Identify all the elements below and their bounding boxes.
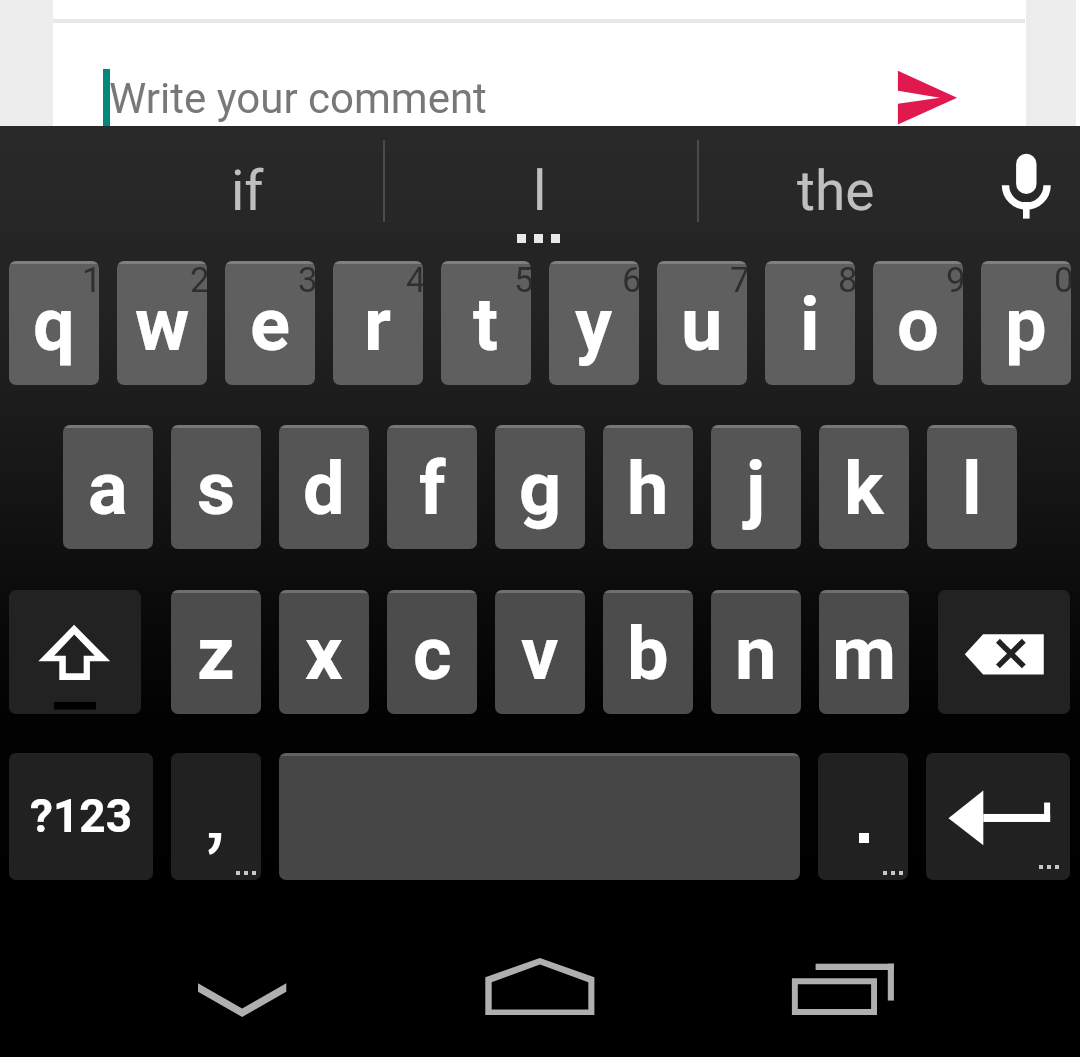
button[interactable]: s — [171, 425, 261, 549]
button[interactable] — [818, 753, 908, 880]
staticText: g — [519, 445, 562, 532]
staticText: q — [33, 281, 75, 368]
button[interactable]: i — [765, 261, 855, 385]
button[interactable]: c — [387, 590, 477, 714]
staticText: l — [962, 445, 982, 532]
button[interactable]: x — [279, 590, 369, 714]
staticText: i — [800, 281, 820, 368]
staticText: l — [533, 159, 547, 223]
staticText: c — [413, 610, 452, 697]
button[interactable]: d — [279, 425, 369, 549]
button[interactable]: v — [495, 590, 585, 714]
button[interactable]: h — [603, 425, 693, 549]
button[interactable]: a — [63, 425, 153, 549]
staticText: e — [250, 281, 290, 368]
button[interactable]: if — [107, 126, 387, 236]
button[interactable]: l — [927, 425, 1017, 549]
staticText: 8 — [838, 261, 855, 301]
button[interactable]: f — [387, 425, 477, 549]
staticText: n — [735, 610, 777, 697]
staticText: x — [305, 610, 343, 697]
button[interactable]: z — [171, 590, 261, 714]
staticText: r — [364, 281, 392, 368]
staticText: a — [88, 445, 128, 532]
staticText: b — [627, 610, 669, 697]
button[interactable]: e — [225, 261, 315, 385]
button[interactable]: r — [333, 261, 423, 385]
staticText: p — [1005, 281, 1047, 368]
button[interactable]: o — [873, 261, 963, 385]
staticText: if — [231, 159, 264, 223]
staticText: t — [473, 281, 499, 368]
staticText: 9 — [946, 261, 963, 301]
staticText: z — [197, 610, 235, 697]
staticText: 6 — [622, 261, 639, 301]
staticText: s — [197, 445, 236, 532]
button[interactable]: l — [400, 126, 680, 236]
staticText: 1 — [82, 261, 99, 301]
button[interactable]: Backspace — [938, 590, 1070, 714]
staticText: 5 — [514, 261, 531, 301]
button[interactable]: Recent apps — [780, 949, 920, 1031]
staticText: 3 — [298, 261, 315, 301]
staticText: y — [575, 281, 613, 368]
button[interactable]: Enter — [926, 753, 1070, 880]
staticText: f — [419, 445, 446, 532]
button[interactable]: t — [441, 261, 531, 385]
button[interactable]: Hide keyboard — [172, 949, 312, 1013]
staticText: o — [897, 281, 939, 368]
staticText: the — [797, 159, 875, 223]
button[interactable]: Space — [279, 753, 800, 880]
staticText: d — [303, 445, 345, 532]
button[interactable]: j — [711, 425, 801, 549]
button[interactable] — [171, 753, 261, 880]
staticText: k — [844, 445, 884, 532]
button[interactable]: n — [711, 590, 801, 714]
staticText: 0 — [1054, 261, 1071, 301]
button[interactable]: p — [981, 261, 1071, 385]
staticText: 2 — [190, 261, 207, 301]
button[interactable]: ?123 — [9, 753, 153, 880]
button[interactable]: the — [696, 126, 976, 236]
button[interactable]: m — [819, 590, 909, 714]
button[interactable]: k — [819, 425, 909, 549]
staticText: Write your comment — [109, 74, 487, 123]
staticText: j — [746, 445, 766, 532]
staticText: 4 — [406, 261, 423, 301]
staticText: 7 — [730, 261, 747, 301]
button[interactable]: Voice input — [976, 134, 1076, 234]
staticText: ?123 — [30, 789, 133, 843]
button[interactable]: b — [603, 590, 693, 714]
staticText: w — [135, 281, 190, 368]
staticText: u — [681, 281, 723, 368]
button[interactable]: Home — [470, 949, 610, 1031]
button[interactable]: y — [549, 261, 639, 385]
button[interactable]: w — [117, 261, 207, 385]
button[interactable]: Shift — [9, 590, 141, 714]
staticText: v — [521, 610, 559, 697]
button[interactable]: g — [495, 425, 585, 549]
button[interactable]: Send — [880, 45, 980, 126]
button[interactable]: u — [657, 261, 747, 385]
staticText: h — [627, 445, 669, 532]
button[interactable]: q — [9, 261, 99, 385]
staticText: m — [832, 610, 897, 697]
